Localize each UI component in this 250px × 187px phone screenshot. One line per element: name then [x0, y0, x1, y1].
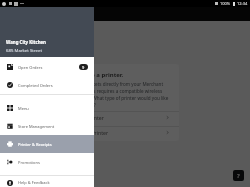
staticText: Help & Feedback — [18, 180, 50, 185]
staticText: Star Printer — [76, 114, 104, 121]
staticText: Promotions — [18, 160, 40, 165]
staticText: 12:34 — [237, 1, 248, 6]
staticText: Print tickets directly from your Merchan… — [76, 81, 169, 108]
button[interactable]: Zebra Printer — [66, 127, 179, 141]
staticText: 685 Market Street — [6, 47, 42, 53]
button[interactable]: Promotions — [0, 153, 94, 171]
staticText: Store Management — [18, 124, 55, 129]
button[interactable]: Star Printer — [66, 112, 179, 126]
button[interactable]: Store Management — [0, 117, 94, 135]
button[interactable]: Completed Orders — [0, 76, 94, 94]
staticText: 9 — [82, 65, 85, 70]
button[interactable]: Menu — [0, 99, 94, 117]
staticText: 100% — [220, 1, 231, 6]
staticText: Set up a printer. — [76, 71, 124, 79]
staticText: Wang City Kitchen — [6, 39, 46, 45]
staticText: ? — [237, 172, 240, 180]
staticText: Completed Orders — [18, 83, 53, 88]
button[interactable]: Help & Feedback — [0, 178, 94, 187]
button[interactable]: Open Orders — [0, 58, 94, 76]
button[interactable]: Help — [233, 170, 244, 181]
staticText: Zebra Printer — [76, 129, 109, 136]
button[interactable]: Printer & Receipts — [0, 135, 94, 153]
staticText: Open Orders — [18, 65, 43, 70]
staticText: Printer & Receipts — [18, 142, 52, 147]
staticText: Menu — [18, 106, 29, 111]
